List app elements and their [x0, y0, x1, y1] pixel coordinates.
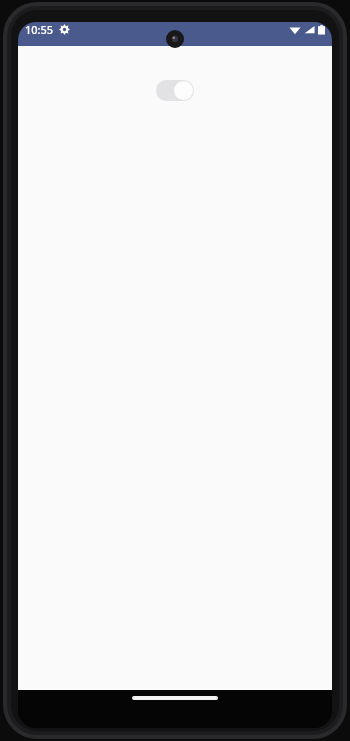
- button[interactable]: Toggle switch: [152, 76, 198, 105]
- staticText: 10:55: [25, 22, 54, 37]
